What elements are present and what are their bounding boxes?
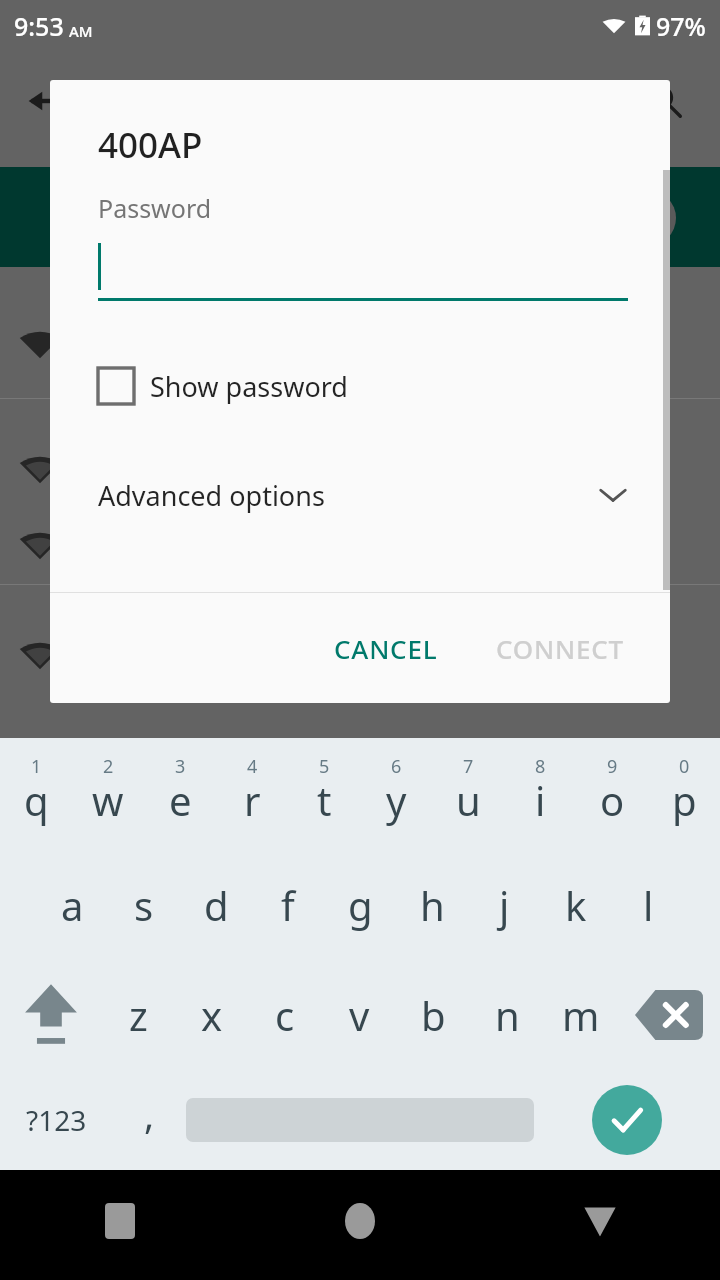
button[interactable]: f (252, 850, 324, 960)
staticText: u (456, 773, 481, 827)
staticText: l (643, 878, 654, 932)
staticText: e (169, 773, 192, 827)
button[interactable]: 2 (72, 738, 144, 850)
staticText: 9:53 (14, 9, 64, 43)
button[interactable]: Show password (50, 354, 670, 418)
staticText: z (129, 988, 148, 1042)
staticText: m (562, 988, 600, 1042)
staticText: 97% (656, 9, 706, 43)
button[interactable]: Advanced options (50, 465, 670, 525)
button[interactable]: c (248, 960, 322, 1070)
button[interactable]: 9 (576, 738, 648, 850)
button[interactable]: , (112, 1070, 186, 1170)
staticText: w (92, 773, 124, 827)
staticText: f (281, 878, 295, 932)
button[interactable]: d (180, 850, 252, 960)
staticText: b (421, 988, 446, 1042)
staticText: i (535, 773, 546, 827)
staticText: 400AP (98, 121, 203, 169)
staticText: q (24, 773, 49, 827)
staticText: 5 (319, 754, 330, 779)
staticText: 6 (391, 754, 402, 779)
button[interactable]: n (470, 960, 544, 1070)
button[interactable]: b (396, 960, 470, 1070)
button[interactable]: 6 (360, 738, 432, 850)
staticText: 9 (607, 754, 618, 779)
staticText: 0 (679, 754, 690, 779)
staticText: ?123 (26, 1101, 87, 1139)
button[interactable]: CONNECT (482, 619, 638, 678)
staticText: r (244, 773, 261, 827)
staticText: 1 (31, 754, 42, 779)
staticText: 8 (535, 754, 546, 779)
staticText: 7 (463, 754, 474, 779)
button[interactable]: Done (534, 1070, 720, 1170)
button[interactable]: 7 (432, 738, 504, 850)
staticText: 3 (175, 754, 186, 779)
staticText: c (275, 988, 295, 1042)
button[interactable]: 1 (0, 738, 72, 850)
button[interactable]: h (396, 850, 468, 960)
button[interactable]: Backspace (618, 960, 720, 1070)
staticText: n (495, 988, 520, 1042)
staticText: v (349, 988, 370, 1042)
button[interactable]: m (544, 960, 618, 1070)
button[interactable]: k (540, 850, 612, 960)
button[interactable]: x (175, 960, 248, 1070)
staticText: CONNECT (496, 631, 624, 666)
button[interactable]: 5 (288, 738, 360, 850)
staticText: p (672, 773, 697, 827)
button[interactable]: 4 (216, 738, 288, 850)
button[interactable]: Home (240, 1170, 480, 1280)
button[interactable]: v (322, 960, 396, 1070)
button[interactable]: 3 (144, 738, 216, 850)
button[interactable]: g (324, 850, 396, 960)
button[interactable]: CANCEL (320, 619, 452, 678)
staticText: CANCEL (334, 631, 438, 666)
staticText: Advanced options (98, 477, 325, 514)
staticText: h (420, 878, 445, 932)
staticText: x (201, 988, 223, 1042)
staticText: Password (98, 191, 212, 225)
staticText: , (144, 1088, 155, 1140)
staticText: 4 (247, 754, 258, 779)
button[interactable]: 0 (648, 738, 720, 850)
button[interactable]: s (108, 850, 180, 960)
staticText: t (317, 773, 332, 827)
staticText: j (499, 878, 510, 932)
button[interactable]: z (102, 960, 175, 1070)
button[interactable]: 8 (504, 738, 576, 850)
staticText: y (386, 773, 407, 827)
staticText: a (61, 878, 84, 932)
button[interactable]: l (612, 850, 684, 960)
staticText: d (204, 878, 229, 932)
staticText: g (348, 878, 373, 932)
button[interactable]: Hide keyboard (480, 1170, 720, 1280)
button[interactable]: j (468, 850, 540, 960)
button[interactable]: Recents (0, 1170, 240, 1280)
staticText: k (565, 878, 587, 932)
staticText: Show password (150, 368, 348, 405)
button[interactable] (98, 243, 628, 301)
staticText: s (134, 878, 154, 932)
staticText: o (600, 773, 625, 827)
staticText: 2 (103, 754, 114, 779)
button[interactable]: a (36, 850, 108, 960)
staticText: AM (69, 21, 93, 41)
button[interactable]: ?123 (0, 1070, 112, 1170)
button[interactable]: Shift (0, 960, 102, 1070)
